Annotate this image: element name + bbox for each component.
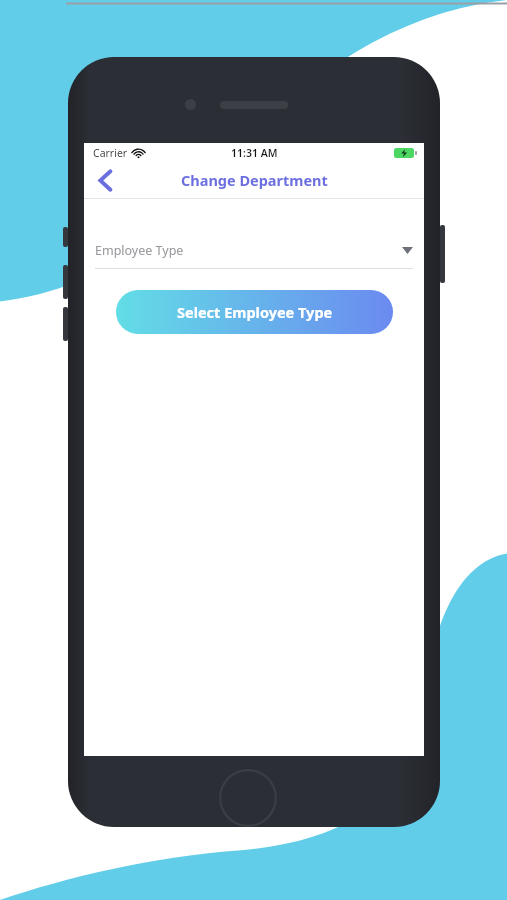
staticText: 11:31 AM [231,146,278,160]
staticText: Change Department [181,170,328,190]
button[interactable]: Back [84,162,126,198]
button[interactable]: Select Employee Type [116,290,393,334]
staticText: Employee Type [95,242,402,259]
staticText: Carrier [93,146,128,160]
button[interactable]: Employee Type [95,237,413,269]
staticText: Select Employee Type [177,302,333,322]
